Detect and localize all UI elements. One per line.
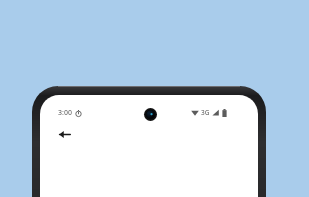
staticText: 3:00: [58, 108, 72, 118]
button[interactable]: Back: [50, 120, 78, 148]
staticText: 3G: [201, 108, 210, 117]
